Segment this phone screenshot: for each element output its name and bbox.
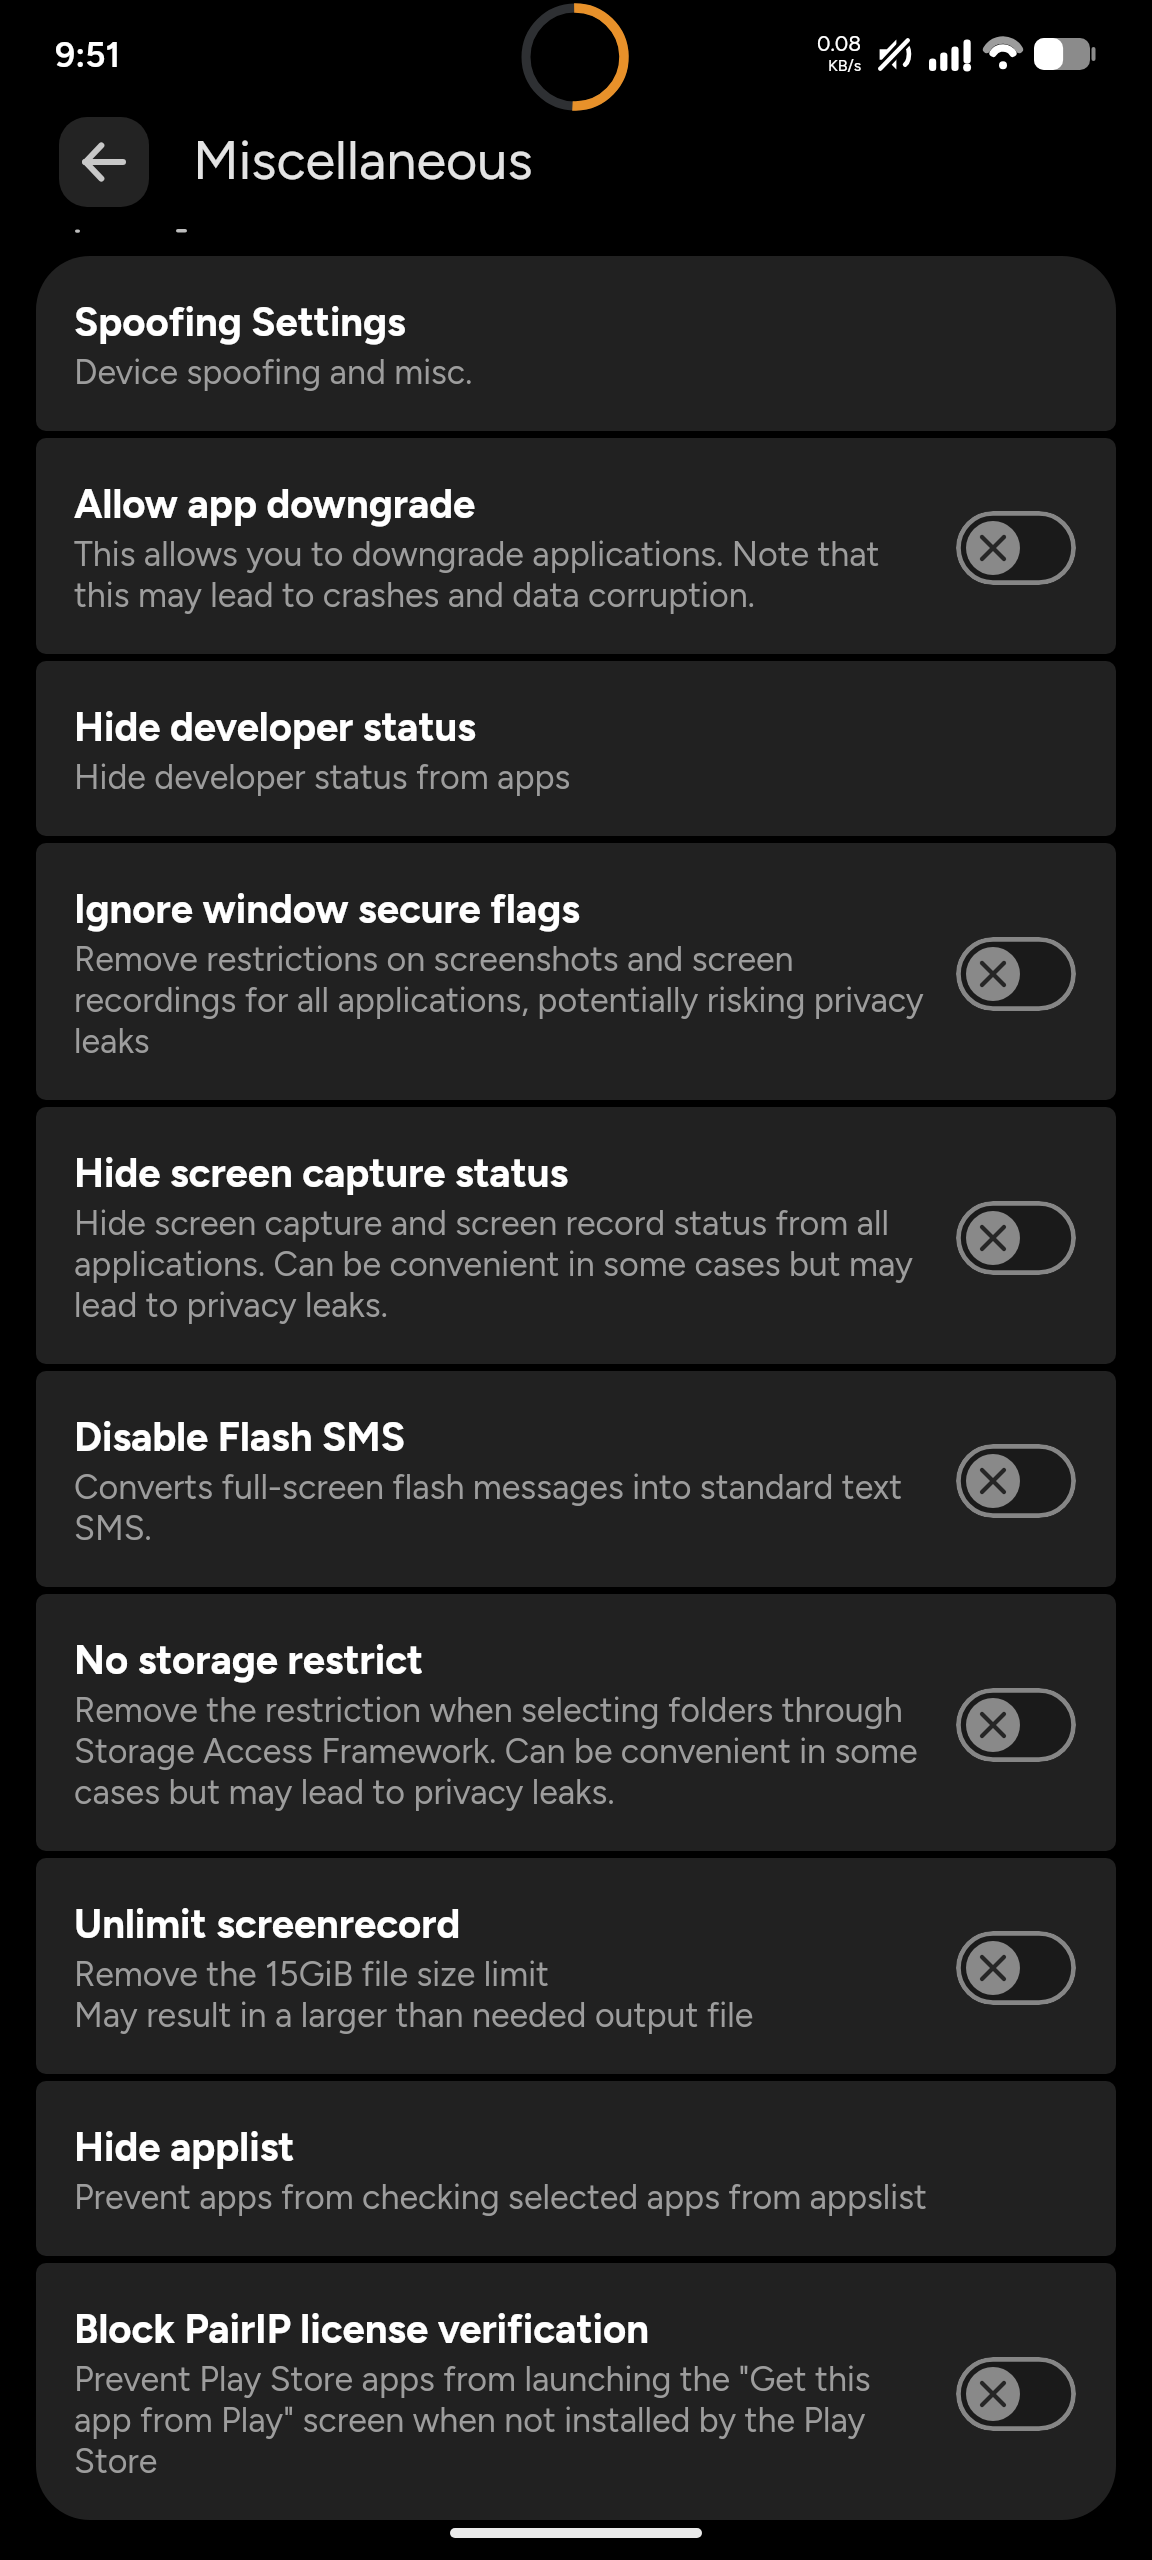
staticText: Hide screen capture status — [74, 1149, 569, 1197]
button[interactable]: Toggle, off — [956, 1201, 1076, 1275]
staticText: Prevent apps from checking selected apps… — [74, 2177, 927, 2218]
button[interactable]: Hide applist — [36, 2081, 1116, 2256]
staticText: Unlimit screenrecord — [74, 1900, 461, 1948]
button[interactable]: Ignore window secure flags — [36, 843, 1116, 1100]
staticText: Hide applist — [74, 2123, 295, 2171]
staticText: Spoofing Settings — [74, 298, 406, 346]
staticText: Hide developer status — [74, 703, 476, 751]
button[interactable]: Block PairIP license verification — [36, 2263, 1116, 2520]
staticText: Hide screen capture and screen record st… — [74, 1203, 932, 1326]
button[interactable]: No storage restrict — [36, 1594, 1116, 1851]
button[interactable]: Toggle, off — [956, 511, 1076, 585]
button[interactable]: Disable Flash SMS — [36, 1371, 1116, 1587]
button[interactable]: Toggle, off — [956, 1444, 1076, 1518]
staticText: Converts full-screen flash messages into… — [74, 1467, 932, 1549]
staticText: KB/s — [828, 56, 862, 75]
button[interactable]: Hide screen capture status — [36, 1107, 1116, 1364]
staticText: Ignore window secure flags — [74, 885, 580, 933]
staticText: Hide developer status from apps — [74, 757, 571, 798]
button[interactable]: Toggle, off — [956, 2357, 1076, 2431]
staticText: Miscellaneous — [193, 128, 533, 193]
staticText: Remove the restriction when selecting fo… — [74, 1690, 932, 1813]
staticText: 0.08 — [817, 31, 862, 56]
staticText: Remove the 15GiB file size limit May res… — [74, 1954, 754, 2036]
button[interactable]: Back — [59, 117, 149, 207]
staticText: This allows you to downgrade application… — [74, 534, 932, 616]
staticText: Allow app downgrade — [74, 480, 476, 528]
staticText: Disable Flash SMS — [74, 1413, 405, 1461]
button[interactable]: Toggle, off — [956, 1688, 1076, 1762]
button[interactable]: Spoofing Settings — [36, 256, 1116, 431]
button[interactable]: Toggle, off — [956, 1931, 1076, 2005]
staticText: No storage restrict — [74, 1636, 424, 1684]
button[interactable]: Unlimit screenrecord — [36, 1858, 1116, 2074]
staticText: Device spoofing and misc. — [74, 352, 473, 393]
staticText: Prevent Play Store apps from launching t… — [74, 2359, 932, 2482]
staticText: 9:51 — [55, 34, 121, 76]
staticText: Remove restrictions on screenshots and s… — [74, 939, 932, 1062]
staticText: Block PairIP license verification — [74, 2305, 649, 2353]
button[interactable]: Hide developer status — [36, 661, 1116, 836]
button[interactable]: Toggle, off — [956, 937, 1076, 1011]
button[interactable]: Allow app downgrade — [36, 438, 1116, 654]
